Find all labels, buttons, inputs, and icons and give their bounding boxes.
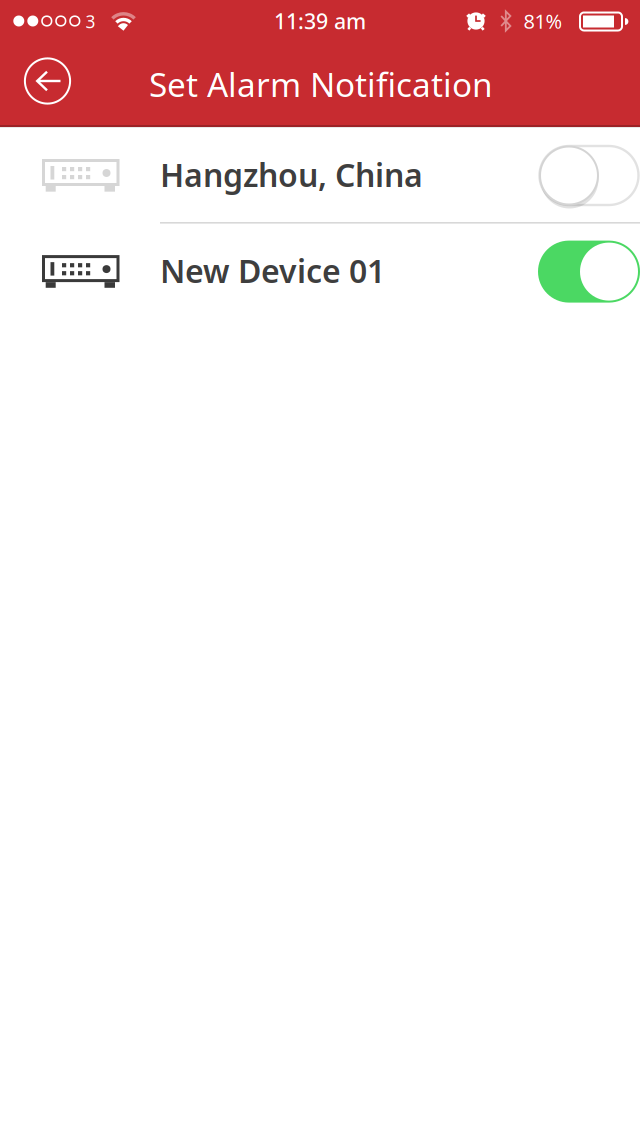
button[interactable]: New Device 01 alarm notification on bbox=[538, 241, 640, 303]
staticText: 11:39 am bbox=[274, 7, 366, 35]
staticText: Hangzhou, China bbox=[160, 153, 423, 196]
button[interactable]: Back bbox=[24, 57, 71, 104]
button[interactable]: Hangzhou, China alarm notification off bbox=[538, 144, 640, 206]
staticText: New Device 01 bbox=[160, 249, 385, 292]
staticText: Set Alarm Notification bbox=[149, 62, 493, 106]
staticText: 3 bbox=[85, 10, 95, 33]
staticText: 81% bbox=[523, 8, 562, 34]
